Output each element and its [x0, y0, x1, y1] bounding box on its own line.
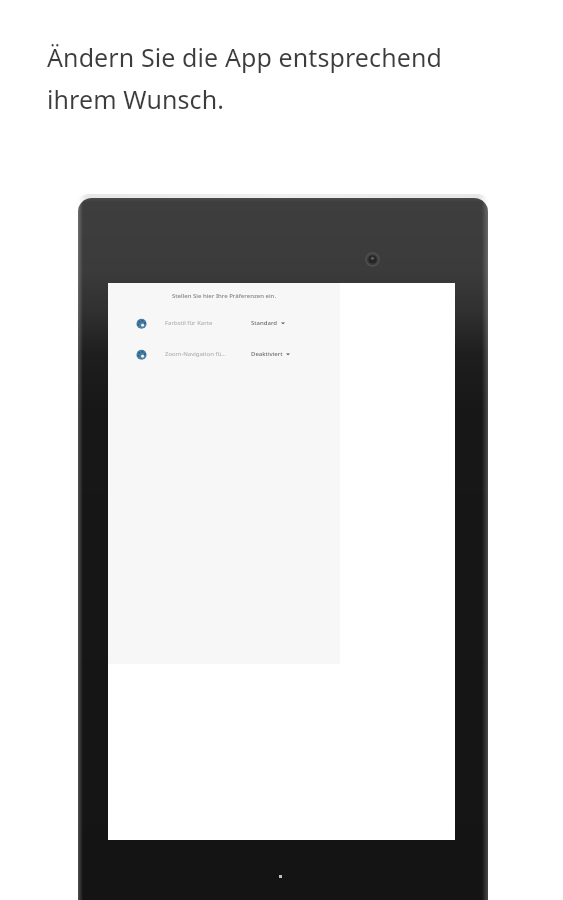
staticText: Ändern Sie die App entsprechend	[47, 40, 442, 74]
staticText: Deaktiviert	[251, 350, 283, 358]
other: Farbpalette	[136, 349, 147, 360]
button[interactable]: Farbpalette	[108, 315, 340, 331]
staticText: Stellen Sie hier Ihre Präferenzen ein.	[172, 292, 277, 300]
staticText: Standard	[251, 319, 278, 327]
button[interactable]: Farbpalette	[108, 346, 340, 362]
staticText: Farbstil für Karte	[165, 319, 251, 327]
other: Farbpalette	[136, 318, 147, 329]
staticText: ihrem Wunsch.	[47, 82, 225, 116]
staticText: Zoom-Navigation fü...	[165, 350, 251, 358]
